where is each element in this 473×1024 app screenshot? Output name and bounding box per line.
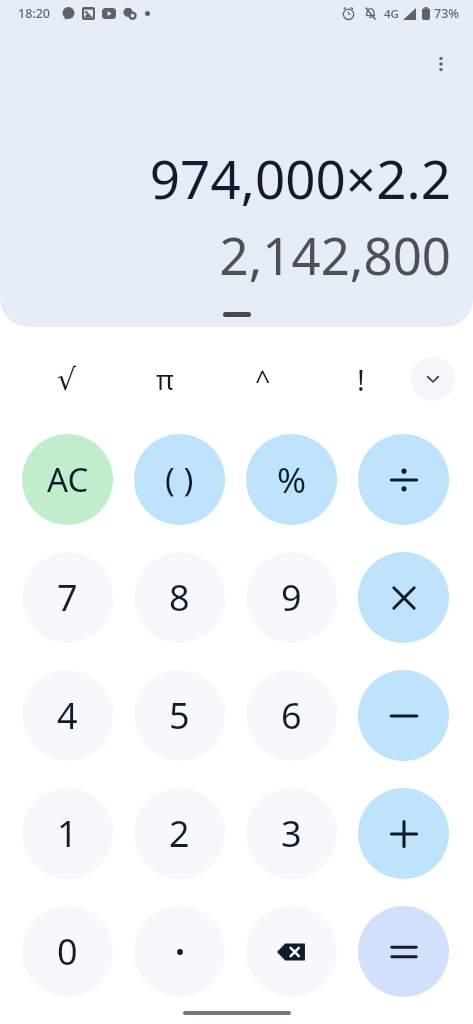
staticText: % — [277, 456, 307, 504]
staticText: 8 — [169, 573, 190, 622]
staticText: 974,000×2.2 — [20, 142, 451, 214]
staticText: 4 — [57, 691, 78, 740]
button[interactable]: AC — [22, 434, 113, 525]
staticText: 6 — [281, 691, 302, 740]
button[interactable]: More options — [417, 40, 465, 88]
button[interactable]: 7 — [22, 552, 113, 643]
staticText: 9 — [281, 573, 302, 622]
button[interactable]: Backspace — [246, 906, 337, 997]
button[interactable]: % — [246, 434, 337, 525]
staticText: ^ — [255, 361, 271, 398]
staticText: 5 — [169, 691, 190, 740]
staticText: 73% — [434, 5, 459, 22]
button[interactable]: ! — [333, 351, 389, 407]
button[interactable]: 3 — [246, 788, 337, 879]
button[interactable]: Divide — [358, 434, 449, 525]
button[interactable]: Decimal point — [134, 906, 225, 997]
button[interactable]: 4 — [22, 670, 113, 761]
staticText: π — [156, 361, 174, 398]
button[interactable]: ^ — [235, 351, 291, 407]
button[interactable]: √ — [39, 351, 95, 407]
button[interactable]: 9 — [246, 552, 337, 643]
staticText: 7 — [57, 573, 78, 622]
staticText: ! — [357, 360, 365, 399]
button[interactable]: Multiply — [358, 552, 449, 643]
staticText: ( ) — [165, 457, 194, 502]
button[interactable]: Subtract — [358, 670, 449, 761]
button[interactable]: ( ) — [134, 434, 225, 525]
staticText: √ — [57, 362, 77, 397]
staticText: 3 — [281, 809, 302, 858]
button[interactable]: 6 — [246, 670, 337, 761]
staticText: 2,142,800 — [20, 220, 451, 289]
staticText: 1 — [57, 809, 78, 858]
button[interactable]: π — [137, 351, 193, 407]
button[interactable]: 2 — [134, 788, 225, 879]
button[interactable]: 0 — [22, 906, 113, 997]
button[interactable]: 8 — [134, 552, 225, 643]
button[interactable]: 1 — [22, 788, 113, 879]
staticText: 4G — [384, 6, 399, 22]
staticText: 2 — [169, 809, 190, 858]
button[interactable]: Add — [358, 788, 449, 879]
staticText: AC — [47, 457, 89, 502]
staticText: 18:20 — [18, 5, 51, 22]
button[interactable]: Equals — [358, 906, 449, 997]
button[interactable]: Expand functions — [411, 357, 455, 401]
button[interactable]: 5 — [134, 670, 225, 761]
staticText: 0 — [57, 927, 78, 976]
